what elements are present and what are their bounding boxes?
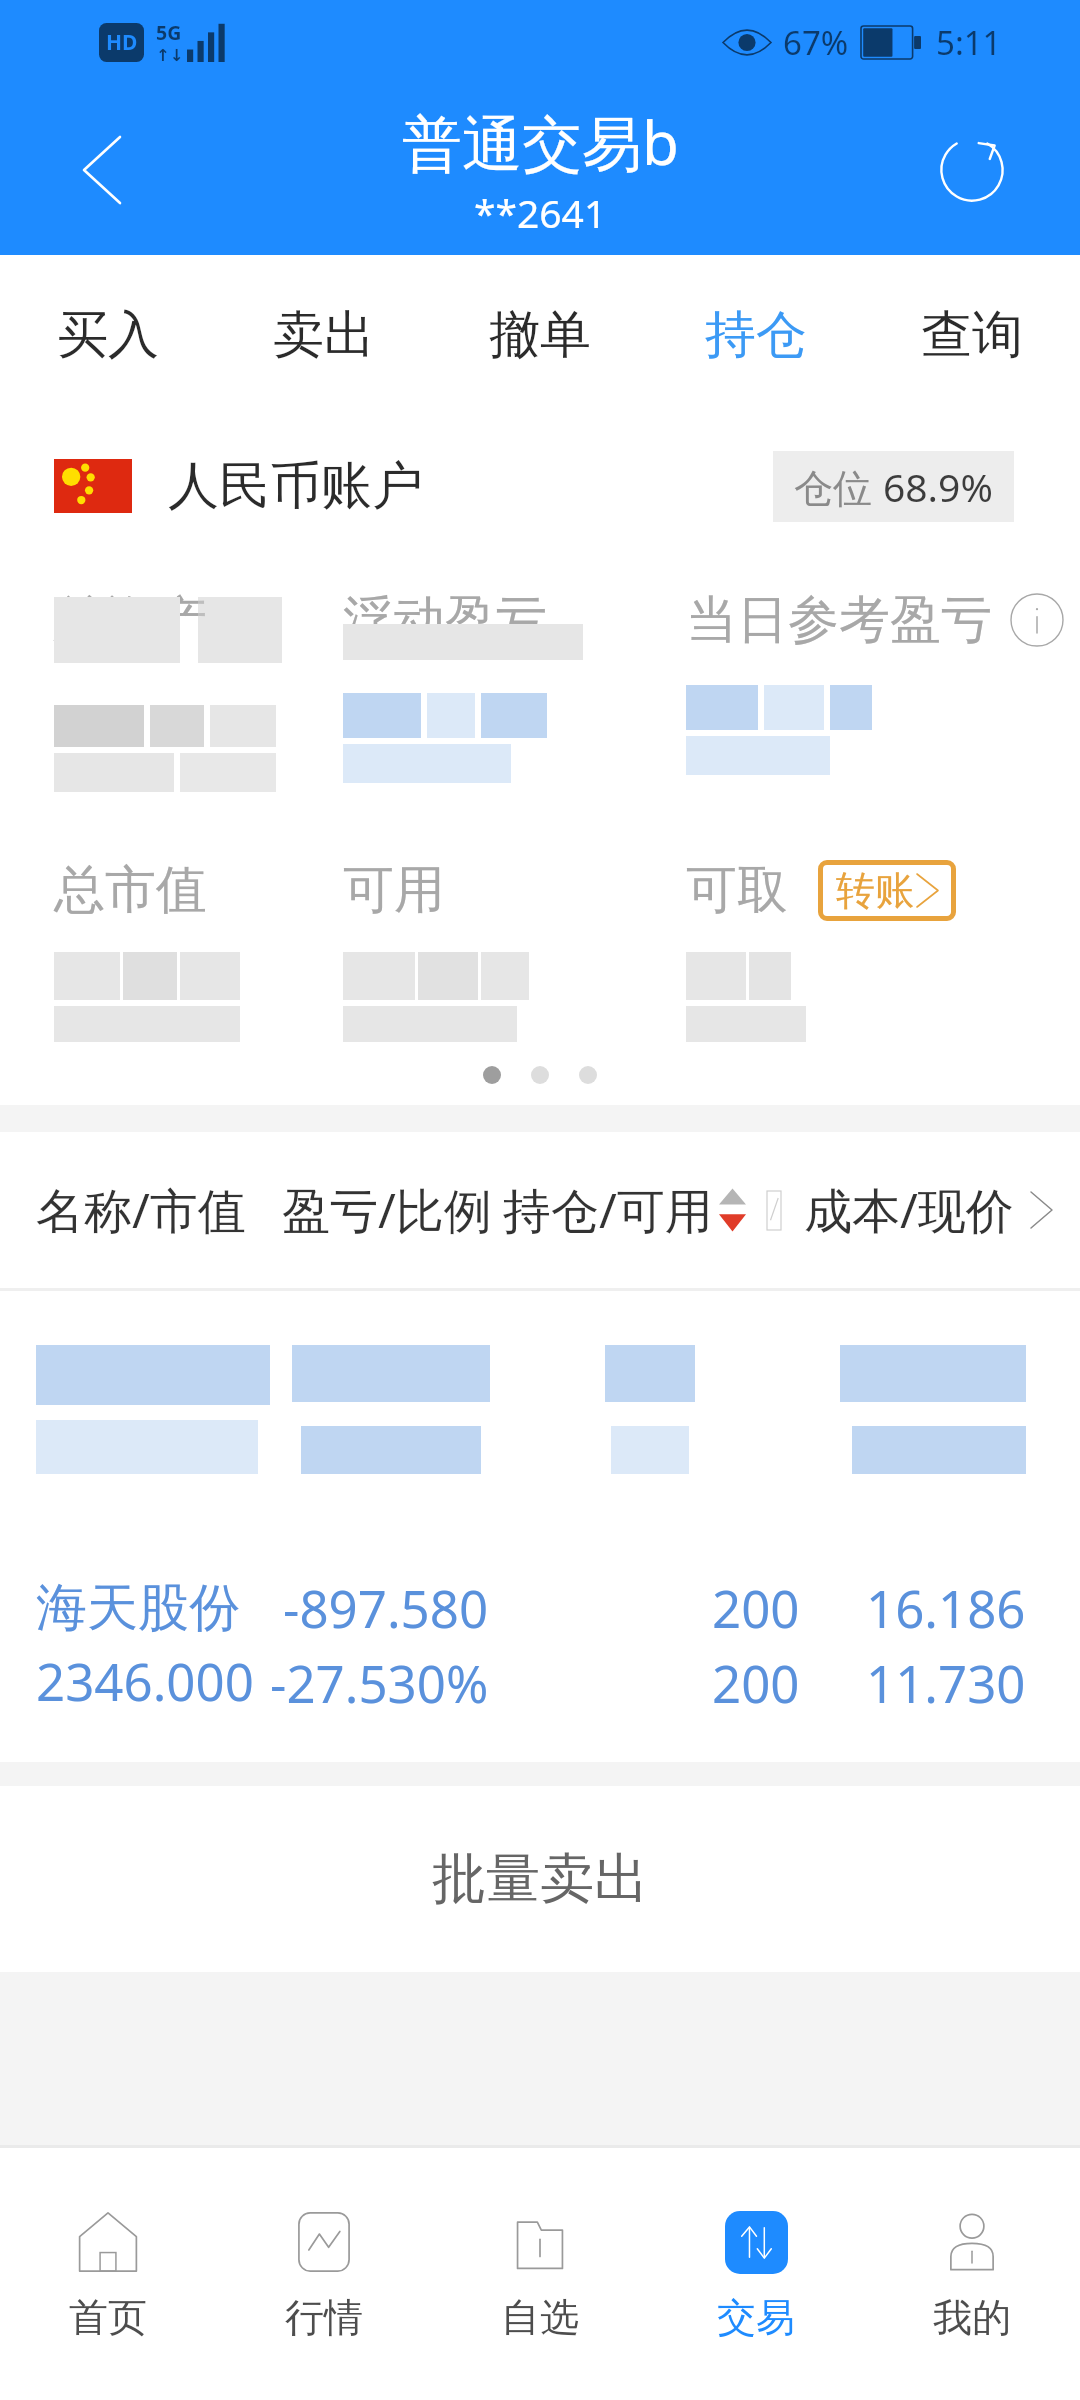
button[interactable]: 批量卖出 [0, 1786, 1080, 1972]
staticText: 5:11 [936, 20, 1002, 65]
button[interactable]: 自选 [432, 2148, 648, 2400]
button[interactable]: 持仓/可用 [503, 1132, 781, 1288]
button[interactable]: 买入 [0, 255, 216, 414]
staticText: 首页 [69, 2293, 147, 2342]
staticText: HD [106, 28, 138, 57]
staticText: 买入 [57, 303, 159, 367]
staticText: 总市值 [54, 858, 207, 922]
button[interactable]: 海天股份 [0, 1528, 1080, 1762]
staticText: 我的 [933, 2293, 1011, 2342]
staticText: 卖出 [273, 303, 375, 367]
button[interactable]: 转账 [818, 860, 956, 921]
button[interactable]: 成本/现价 [781, 1132, 1014, 1288]
staticText: 16.186 [866, 1573, 1026, 1642]
staticText: -897.580 [283, 1573, 489, 1642]
staticText: 持仓/可用 [503, 1177, 713, 1243]
staticText: 总资产 [54, 588, 207, 652]
button[interactable]: 人民币账户 [54, 454, 423, 518]
staticText: 5G [156, 19, 182, 46]
staticText: 2346.000 [36, 1646, 254, 1715]
staticText: 当日参考盈亏 [686, 588, 992, 652]
button[interactable]: Info [1007, 590, 1067, 650]
button[interactable]: Edit columns [767, 1183, 781, 1237]
staticText: 200 [712, 1648, 800, 1717]
staticText: 普通交易b [402, 101, 679, 183]
button[interactable]: Refresh [900, 98, 1044, 242]
staticText: 浮动盈亏 [343, 588, 547, 652]
button[interactable]: 名称/市值 [36, 1132, 270, 1288]
button[interactable]: 盈亏/比例 [270, 1132, 503, 1288]
button[interactable]: 交易 [648, 2148, 864, 2400]
staticText: 转账 [836, 866, 914, 915]
button[interactable]: 撤单 [432, 255, 648, 414]
staticText: 持仓 [705, 303, 807, 367]
staticText: 盈亏/比例 [282, 1177, 492, 1243]
staticText: 交易 [717, 2293, 795, 2342]
staticText: 可取 [686, 858, 788, 922]
staticText: 海天股份 [36, 1576, 240, 1640]
staticText: 11.730 [866, 1648, 1026, 1717]
button[interactable]: Back [30, 98, 174, 242]
staticText: ↑↓ [156, 46, 184, 65]
staticText: 撤单 [489, 303, 591, 367]
button[interactable]: 仓位 [794, 460, 993, 513]
staticText: 可用 [343, 858, 445, 922]
button[interactable]: 持仓 [648, 255, 864, 414]
staticText: 行情 [285, 2293, 363, 2342]
staticText: 67% [783, 20, 849, 65]
button[interactable]: 卖出 [216, 255, 432, 414]
staticText: 批量卖出 [432, 1845, 648, 1913]
button[interactable] [0, 1291, 1080, 1528]
staticText: 成本/现价 [804, 1177, 1014, 1243]
staticText: 名称/市值 [36, 1177, 246, 1243]
staticText: 200 [712, 1573, 800, 1642]
button[interactable]: 查询 [864, 255, 1080, 414]
staticText: 仓位 [794, 460, 883, 513]
staticText: -27.530% [270, 1648, 489, 1717]
staticText: 68.9% [883, 460, 993, 513]
staticText: 自选 [501, 2293, 579, 2342]
staticText: **2641 [474, 186, 607, 239]
button[interactable]: 首页 [0, 2148, 216, 2400]
staticText: 人民币账户 [168, 454, 423, 518]
staticText: 查询 [921, 303, 1023, 367]
button[interactable]: 我的 [864, 2148, 1080, 2400]
button[interactable]: 行情 [216, 2148, 432, 2400]
